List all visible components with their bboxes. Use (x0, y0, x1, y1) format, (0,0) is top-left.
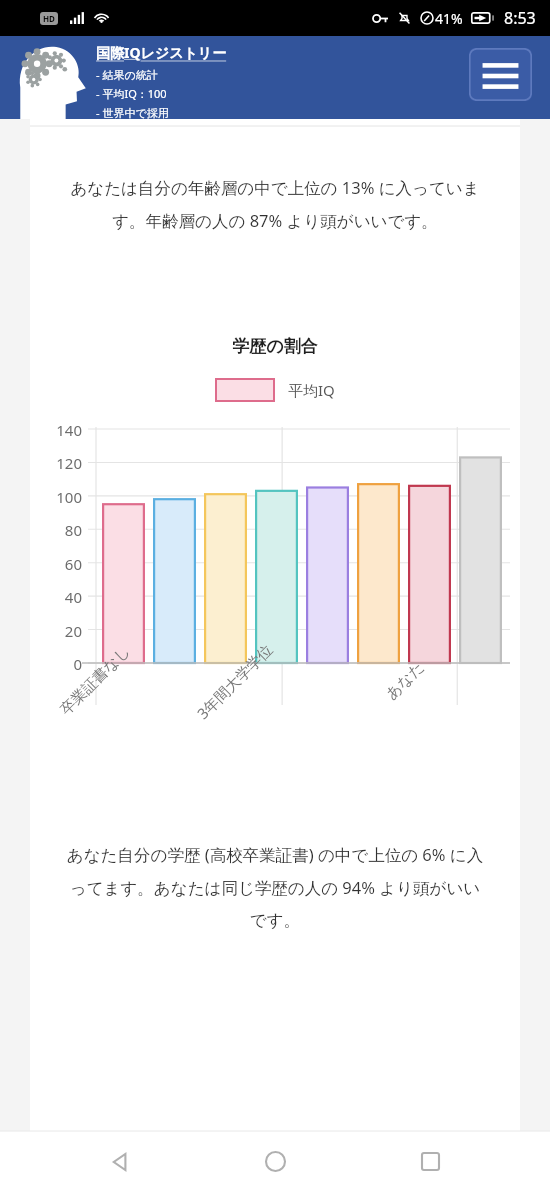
staticText: - 平均IQ：100 (96, 86, 167, 101)
staticText: 80 (64, 520, 82, 540)
staticText: 平均IQ (288, 380, 335, 400)
staticText: HD (43, 13, 55, 24)
button[interactable]: Back (87, 1131, 155, 1192)
staticText: あなた (382, 657, 429, 704)
staticText: 20 (64, 621, 82, 641)
staticText: 卒業証書なし (57, 642, 134, 719)
staticText: 120 (56, 453, 82, 473)
button[interactable]: Recents (396, 1131, 464, 1192)
button[interactable]: Menu (469, 48, 532, 101)
staticText: 国際IQレジストリー (96, 43, 227, 62)
staticText: 学歴の割合 (30, 336, 520, 357)
staticText: 140 (56, 420, 82, 440)
staticText: - 結果の統計 (96, 67, 158, 82)
staticText: 8:53 (504, 7, 536, 29)
staticText: 41% (435, 9, 463, 28)
staticText: 40 (64, 587, 82, 607)
staticText: あなたは自分の年齢層の中で上位の 13% に入っています。年齢層の人の 87% … (68, 176, 482, 232)
staticText: - 世界中で採用 (96, 105, 169, 119)
staticText: 60 (64, 554, 82, 574)
staticText: 100 (56, 487, 82, 507)
staticText: あなた自分の学歴 (高校卒業証書) の中で上位の 6% に入ってます。あなたは同… (66, 843, 484, 931)
staticText: 0 (73, 654, 82, 674)
staticText: 3年間大学学位 (192, 639, 276, 723)
button[interactable]: Home (241, 1131, 309, 1192)
